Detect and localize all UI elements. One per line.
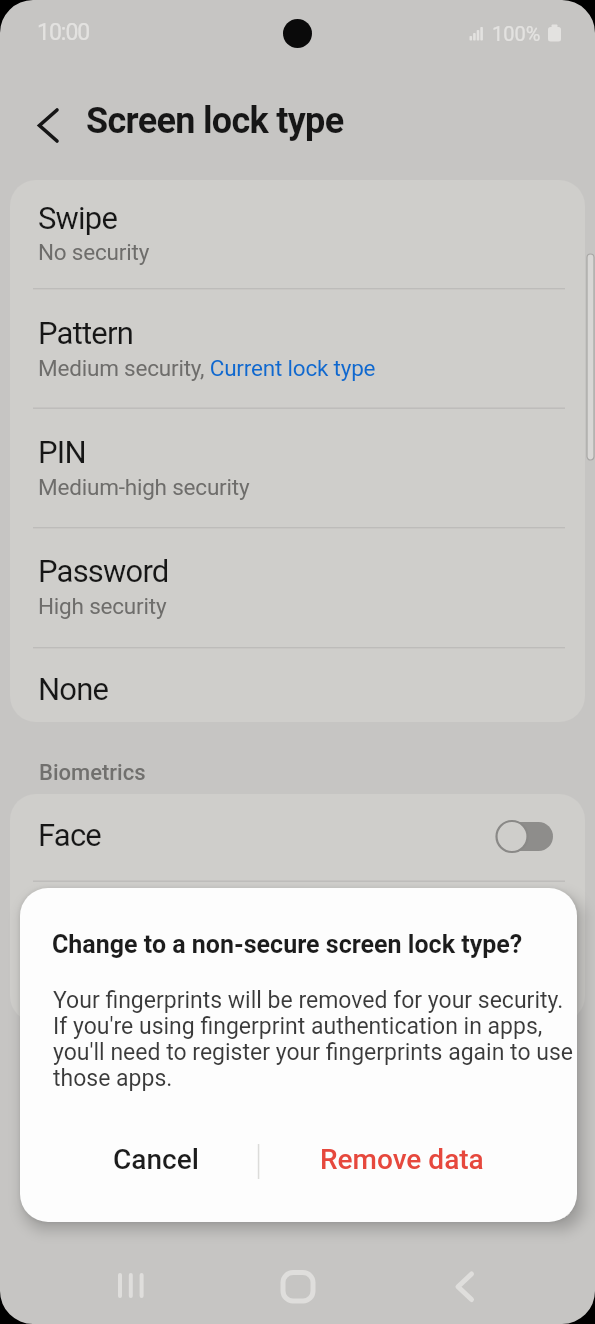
button[interactable] (436, 1262, 496, 1310)
button[interactable] (10, 527, 585, 647)
staticText: High security (38, 593, 167, 619)
button[interactable]: Cancel (80, 1126, 240, 1188)
staticText: PIN (38, 434, 86, 470)
staticText: Medium-high security (38, 474, 250, 500)
button[interactable] (10, 647, 585, 722)
button[interactable] (10, 797, 585, 877)
staticText: Your fingerprints will be removed for yo… (53, 987, 573, 1092)
staticText: 10:00 (37, 19, 90, 46)
staticText: Swipe (38, 200, 118, 236)
staticText: Remove data (320, 1143, 484, 1176)
staticText: Face (38, 817, 101, 853)
staticText: Medium security, Current lock type (38, 355, 376, 381)
staticText: Cancel (113, 1143, 199, 1176)
button[interactable] (26, 104, 70, 148)
staticText: Screen lock type (86, 100, 344, 142)
button[interactable] (10, 288, 585, 407)
staticText: Password (38, 553, 169, 589)
staticText: 100% (492, 22, 541, 45)
staticText: No security (38, 239, 150, 265)
button[interactable] (268, 1262, 328, 1310)
button[interactable] (10, 180, 585, 288)
button[interactable]: Remove data (300, 1126, 500, 1188)
staticText: Biometrics (39, 760, 146, 786)
staticText: Pattern (38, 315, 133, 351)
button[interactable] (10, 407, 585, 527)
staticText: None (38, 671, 109, 707)
button[interactable] (100, 1262, 160, 1310)
staticText: Change to a non-secure screen lock type? (52, 930, 523, 959)
